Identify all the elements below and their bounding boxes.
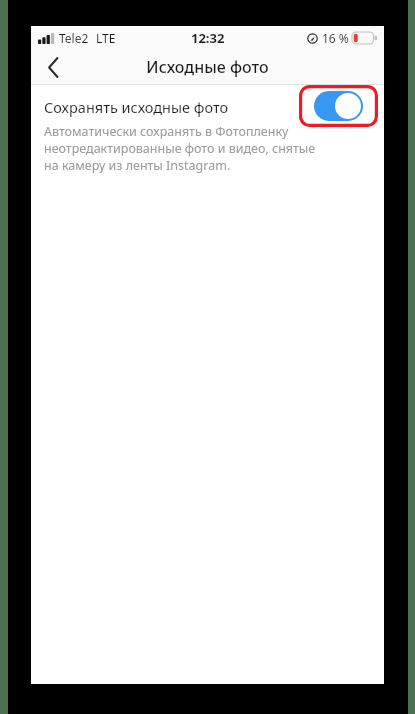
staticText: 16 % <box>322 30 349 46</box>
staticText: LTE <box>96 30 116 46</box>
staticText: Исходные фото <box>146 56 269 78</box>
staticText: Tele2 <box>59 30 89 46</box>
button[interactable]: Сохранять исходные фото <box>31 85 384 184</box>
staticText: Автоматически сохранять в Фотопленку нео… <box>44 123 316 174</box>
staticText: Сохранять исходные фото <box>44 97 229 117</box>
button[interactable]: Save original photos toggle <box>299 85 378 127</box>
staticText: 12:32 <box>191 29 225 47</box>
button[interactable]: Back <box>31 50 75 84</box>
